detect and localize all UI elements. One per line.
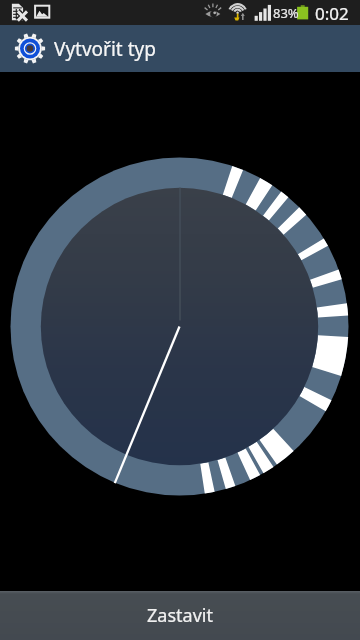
staticText: Zastavit (147, 603, 213, 628)
staticText: 0:02 (315, 2, 349, 25)
staticText: Vytvořit typ (54, 36, 156, 62)
button[interactable]: Vytvořit typ (0, 25, 360, 72)
button[interactable]: Zastavit (0, 591, 360, 640)
staticText: 83% (273, 4, 299, 22)
